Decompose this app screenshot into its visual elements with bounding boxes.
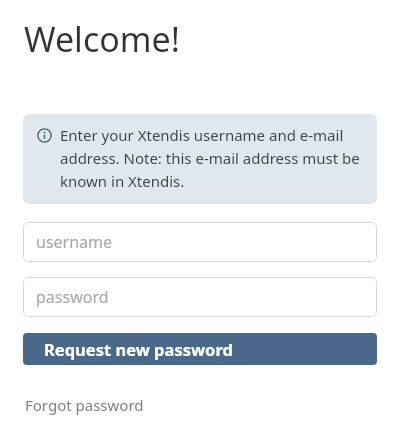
staticText: Welcome! bbox=[24, 16, 180, 62]
staticText: password bbox=[36, 286, 109, 308]
staticText: Forgot password bbox=[25, 395, 144, 415]
button[interactable]: Request new password bbox=[23, 333, 377, 365]
button[interactable]: username bbox=[23, 222, 377, 262]
other: Information bbox=[37, 128, 52, 143]
button[interactable]: password bbox=[23, 277, 377, 317]
staticText: Enter your Xtendis username and e-mail a… bbox=[60, 125, 363, 191]
staticText: username bbox=[36, 231, 113, 253]
button[interactable]: Forgot password bbox=[23, 393, 146, 417]
staticText: Request new password bbox=[44, 338, 233, 360]
